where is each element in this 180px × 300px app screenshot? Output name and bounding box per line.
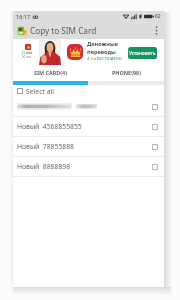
staticText: PHONE(98) [112, 69, 141, 76]
staticText: Денежные [87, 40, 118, 48]
button[interactable]: Новый 8888898 [13, 157, 164, 176]
button[interactable]: Установить [128, 47, 157, 59]
staticText: Новый 78855888 [17, 142, 74, 151]
button[interactable]: PHONE(98) [88, 65, 164, 81]
staticText: 4.3 [87, 56, 93, 62]
button[interactable]: SIM CARD(4) [13, 65, 88, 81]
button[interactable]: Новый 78855888 [13, 137, 164, 156]
staticText: Установить [129, 50, 156, 57]
staticText: Copy to SIM Card [30, 25, 97, 36]
button[interactable] [13, 97, 164, 116]
staticText: БЕСПЛАТНО [97, 56, 122, 62]
staticText: Select all [26, 87, 54, 96]
staticText: Новый 4568855855 [17, 122, 82, 131]
staticText: SIM CARD(4) [34, 69, 67, 76]
staticText: переводы [87, 48, 116, 56]
button[interactable]: More options [150, 22, 163, 39]
staticText: 16:17 [16, 13, 31, 20]
staticText: 82 [155, 13, 161, 20]
button[interactable]: Select all [13, 85, 164, 97]
staticText: Новый 8888898 [17, 162, 71, 171]
button[interactable]: Новый 4568855855 [13, 117, 164, 136]
